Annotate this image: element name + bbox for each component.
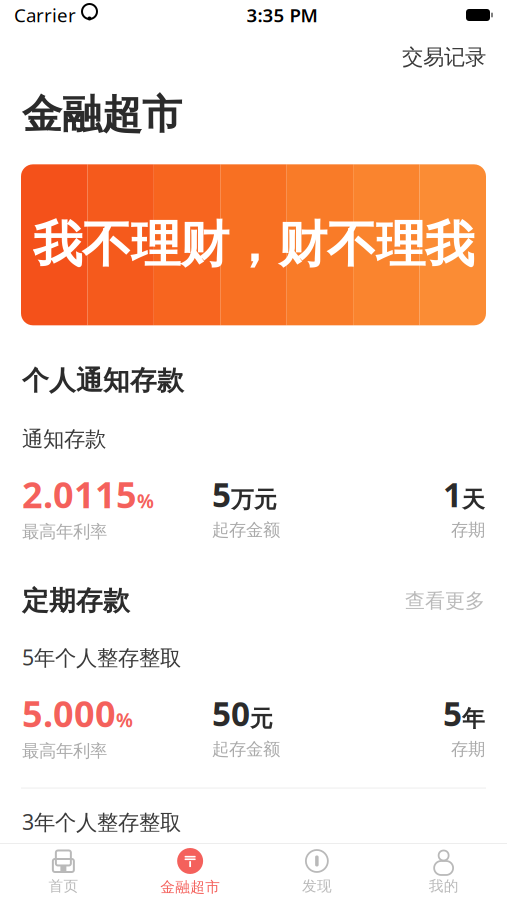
staticText: 个人通知存款 xyxy=(22,364,184,397)
staticText: 元 xyxy=(250,705,273,733)
staticText: 首页 xyxy=(48,877,78,895)
staticText: 存期 xyxy=(451,519,485,541)
staticText: 我不理财，财不理我 xyxy=(33,214,474,275)
staticText: 5年个人整存整取 xyxy=(22,643,181,671)
button[interactable]: 3年个人整存整取 xyxy=(0,789,507,836)
button[interactable]: 首页 xyxy=(0,846,127,898)
staticText: Carrier xyxy=(14,3,76,27)
staticText: 交易记录 xyxy=(402,44,486,70)
staticText: 通知存款 xyxy=(22,426,106,452)
staticText: 万元 xyxy=(231,486,277,513)
staticText: 定期存款 xyxy=(22,584,130,617)
button[interactable]: 交易记录 xyxy=(381,38,507,76)
staticText: 金融超市 xyxy=(160,878,220,896)
button[interactable]: 5年个人整存整取 xyxy=(0,617,507,761)
staticText: 存期 xyxy=(451,738,485,760)
button[interactable]: 金融超市 xyxy=(127,846,254,898)
staticText: 查看更多 xyxy=(405,588,485,613)
staticText: 金融超市 xyxy=(22,90,182,139)
staticText: 天 xyxy=(462,486,485,513)
staticText: 50 xyxy=(212,691,250,735)
button[interactable]: 查看更多 xyxy=(405,584,485,617)
staticText: 起存金额 xyxy=(212,738,280,760)
staticText: 起存金额 xyxy=(212,519,280,541)
staticText: 3年个人整存整取 xyxy=(22,808,181,836)
staticText: 3:35 PM xyxy=(246,3,317,27)
staticText: 发现 xyxy=(302,877,332,895)
staticText: 最高年利率 xyxy=(22,521,107,542)
button[interactable]: 发现 xyxy=(253,846,380,898)
staticText: 2.0115 xyxy=(22,470,137,518)
staticText: 最高年利率 xyxy=(22,740,107,762)
staticText: 年 xyxy=(462,705,485,733)
staticText: 5.000 xyxy=(22,689,116,737)
staticText: 1 xyxy=(443,472,462,516)
button[interactable]: 通知存款 xyxy=(0,397,507,542)
staticText: % xyxy=(116,708,133,732)
staticText: 5 xyxy=(212,472,231,516)
staticText: % xyxy=(137,488,154,513)
staticText: 我的 xyxy=(429,877,459,895)
button[interactable]: 我的 xyxy=(380,846,507,898)
staticText: 5 xyxy=(443,691,462,735)
